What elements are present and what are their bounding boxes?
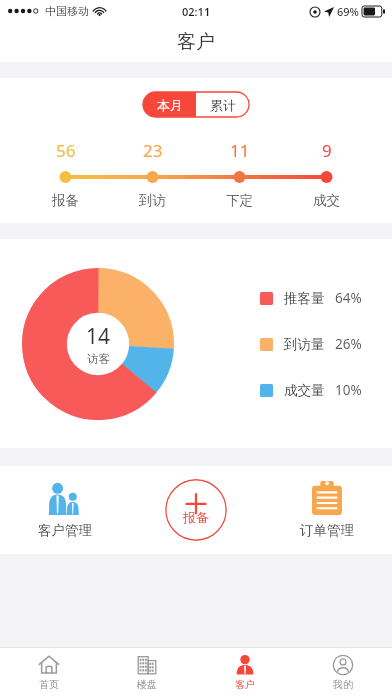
staticText: 11	[230, 139, 250, 162]
button[interactable]: 客户管理	[0, 466, 130, 554]
staticText: 报备	[183, 509, 209, 525]
button[interactable]: 累计	[196, 92, 249, 117]
button[interactable]: 客户	[196, 648, 294, 696]
staticText: 推客量	[284, 290, 325, 307]
staticText: 成交量	[284, 382, 325, 399]
staticText: 64%	[335, 289, 362, 307]
staticText: 访客	[87, 352, 110, 366]
button[interactable]: 首页	[0, 648, 98, 696]
staticText: 下定	[226, 192, 253, 209]
staticText: 到访量	[284, 336, 325, 353]
staticText: 订单管理	[300, 522, 354, 539]
staticText: 23	[143, 139, 163, 162]
staticText: 客户	[177, 30, 215, 54]
button[interactable]: 报备	[165, 479, 227, 541]
staticText: 首页	[39, 678, 59, 691]
staticText: 26%	[335, 335, 362, 353]
staticText: 到访	[139, 192, 166, 209]
button[interactable]: 订单管理	[261, 466, 392, 554]
staticText: 56	[56, 139, 76, 162]
staticText: 02:11	[182, 4, 211, 19]
staticText: 累计	[210, 97, 236, 113]
staticText: 客户	[235, 678, 255, 691]
button[interactable]: 本月	[143, 92, 196, 117]
staticText: 客户管理	[38, 522, 92, 539]
staticText: 成交	[313, 192, 340, 209]
staticText: 中国移动	[45, 4, 89, 18]
staticText: 本月	[157, 97, 183, 113]
staticText: 楼盘	[137, 678, 157, 691]
button[interactable]: 我的	[294, 648, 392, 696]
staticText: 我的	[333, 678, 353, 691]
button[interactable]: 楼盘	[98, 648, 196, 696]
staticText: 报备	[52, 192, 79, 209]
staticText: 10%	[335, 381, 362, 399]
staticText: 14	[86, 322, 111, 351]
staticText: 9	[322, 139, 332, 162]
staticText: 69%	[337, 4, 359, 19]
